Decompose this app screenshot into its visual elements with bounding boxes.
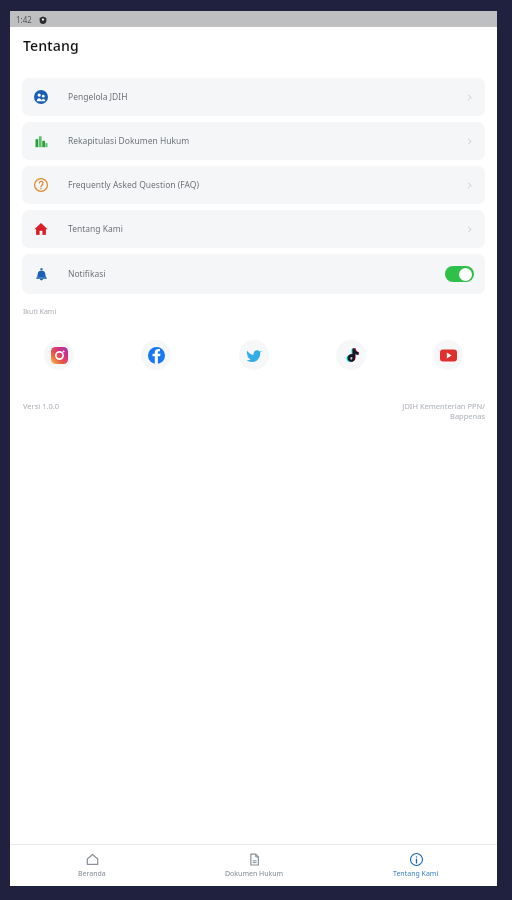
staticText: Tentang Kami: [393, 869, 439, 879]
button[interactable]: Rekapitulasi Dokumen Hukum: [22, 122, 485, 160]
staticText: Pengelola JDIH: [68, 91, 128, 103]
staticText: JDIH Kementerian PPN/ Bappenas: [402, 401, 485, 421]
button[interactable]: Notifikasi: [22, 254, 485, 294]
button[interactable]: Tentang Kami: [22, 210, 485, 248]
staticText: Ikuti Kami: [23, 307, 57, 317]
staticText: Versi 1.0.0: [23, 401, 60, 411]
staticText: Dokumen Hukum: [225, 869, 284, 879]
button[interactable]: Notifikasi toggle: [445, 266, 474, 282]
button[interactable]: Twitter: [239, 340, 269, 370]
button[interactable]: YouTube: [433, 340, 463, 370]
button[interactable]: Dokumen Hukum: [173, 848, 335, 883]
button[interactable]: Tentang Kami: [335, 848, 497, 883]
button[interactable]: Pengelola JDIH: [22, 78, 485, 116]
staticText: Tentang Kami: [68, 223, 123, 235]
button[interactable]: Instagram: [44, 340, 74, 370]
staticText: Frequently Asked Question (FAQ): [68, 179, 200, 191]
button[interactable]: Beranda: [10, 848, 173, 883]
staticText: Rekapitulasi Dokumen Hukum: [68, 135, 190, 147]
staticText: Beranda: [78, 869, 106, 879]
staticText: 1:42: [16, 14, 32, 25]
button[interactable]: Frequently Asked Question (FAQ): [22, 166, 485, 204]
button[interactable]: TikTok: [336, 340, 366, 370]
button[interactable]: Facebook: [141, 340, 171, 370]
staticText: Notifikasi: [68, 268, 106, 280]
staticText: Tentang: [23, 36, 79, 55]
